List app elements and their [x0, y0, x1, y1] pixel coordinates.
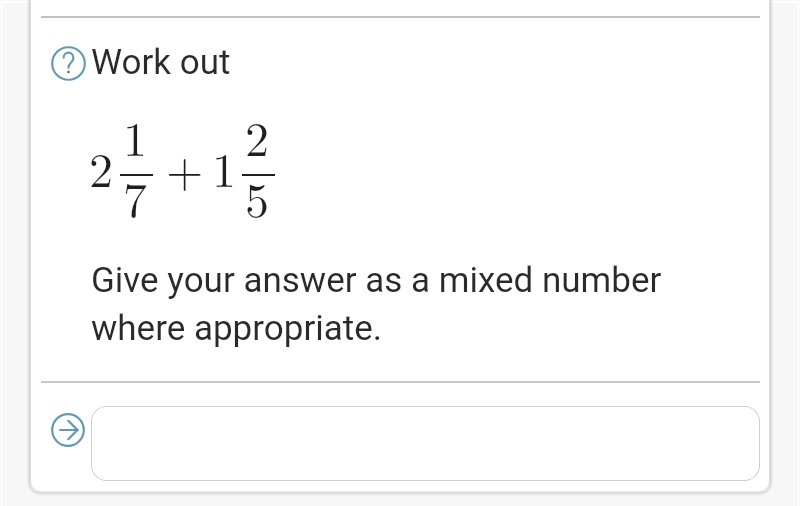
staticText: 5	[245, 163, 270, 231]
staticText: +	[166, 133, 204, 201]
staticText: 1	[123, 102, 148, 170]
button[interactable]: Work out	[51, 43, 233, 83]
button[interactable]: Submit answer	[51, 413, 85, 447]
staticText: 1	[212, 133, 237, 201]
staticText: Work out	[91, 42, 231, 82]
staticText: 2	[89, 133, 114, 201]
staticText: 2	[245, 102, 270, 170]
staticText: 7	[123, 163, 148, 231]
staticText: Give your answer as a mixed number where…	[91, 260, 662, 348]
button[interactable]: Answer input field	[91, 406, 760, 481]
